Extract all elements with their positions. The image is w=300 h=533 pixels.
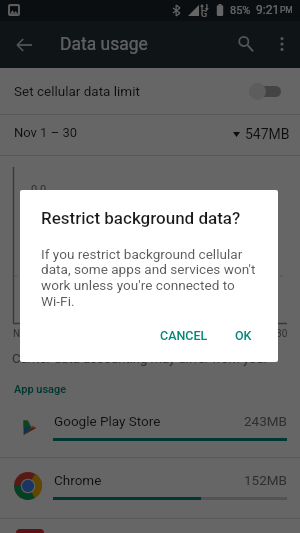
staticText: Carrier data accounting may differ from … bbox=[12, 351, 300, 366]
button[interactable]: Chrome bbox=[0, 457, 300, 516]
button[interactable]: CANCEL bbox=[152, 323, 216, 348]
staticText: 547MB bbox=[245, 126, 290, 142]
staticText: App usage bbox=[14, 383, 67, 396]
staticText: Chrome bbox=[54, 472, 102, 488]
staticText: 152MB bbox=[244, 472, 287, 488]
staticText: PM bbox=[280, 5, 293, 15]
staticText: Nov 1 bbox=[13, 328, 39, 340]
button[interactable]: Set cellular data limit bbox=[0, 68, 300, 114]
staticText: CANCEL bbox=[160, 328, 208, 343]
staticText: G bbox=[201, 9, 208, 20]
staticText: Data usage bbox=[60, 34, 148, 55]
button[interactable]: Navigate up bbox=[8, 31, 39, 58]
staticText: Restrict background data? bbox=[41, 208, 241, 228]
staticText: Nov 30 bbox=[256, 328, 288, 340]
staticText: 85% bbox=[230, 4, 251, 17]
staticText: If you restrict background cellular data… bbox=[41, 246, 256, 310]
staticText: 0.0 bbox=[31, 183, 47, 196]
button[interactable]: More options bbox=[270, 32, 293, 55]
staticText: Google Play Store bbox=[54, 413, 161, 429]
button[interactable]: OK bbox=[227, 323, 260, 348]
button[interactable]: Search bbox=[232, 30, 259, 57]
staticText: OK bbox=[235, 328, 252, 343]
staticText: 9:21 bbox=[256, 3, 280, 17]
button[interactable]: Google Play Store bbox=[0, 398, 300, 457]
staticText: Nov 1 – 30 bbox=[14, 125, 78, 140]
button[interactable]: Nov 1 – 30 bbox=[0, 115, 300, 155]
staticText: Set cellular data limit bbox=[14, 83, 140, 99]
staticText: 243MB bbox=[244, 413, 287, 429]
